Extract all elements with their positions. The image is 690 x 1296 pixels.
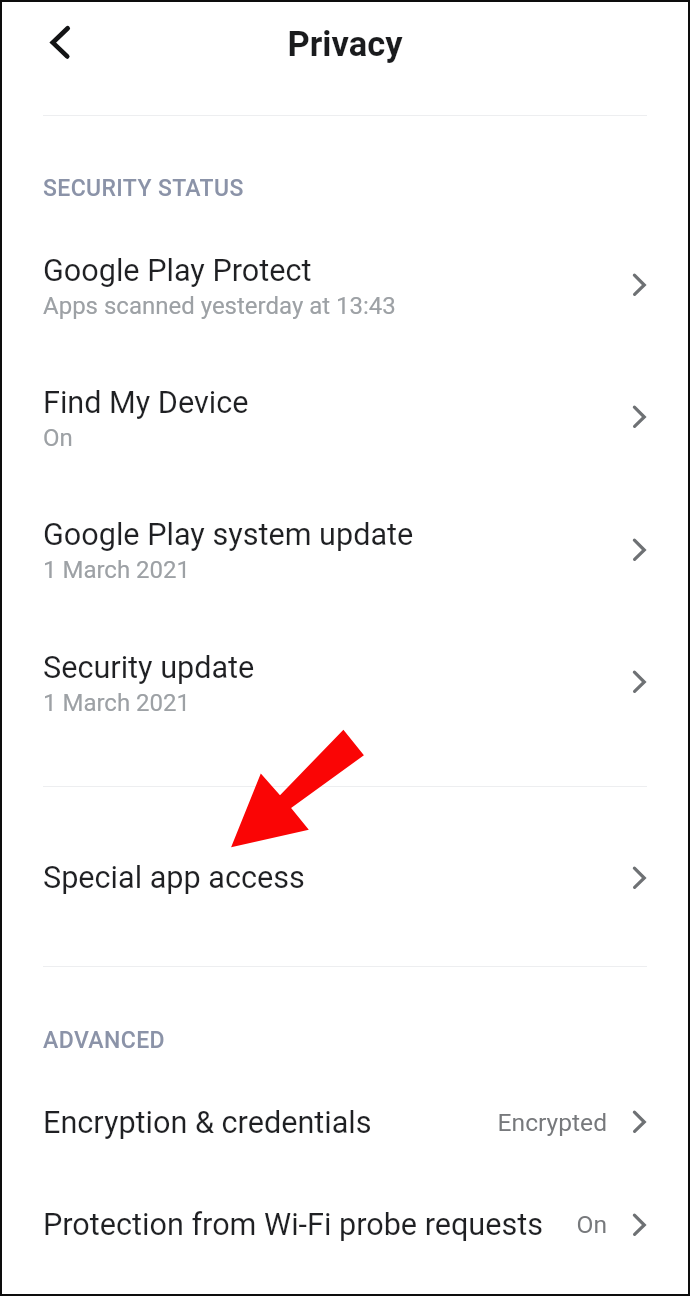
staticText: Encrypted <box>2 1108 607 1137</box>
staticText: Protection from Wi-Fi probe requests <box>43 1207 544 1243</box>
staticText: 1 March 2021 <box>43 689 191 717</box>
staticText: Security update <box>43 650 255 686</box>
button[interactable]: Find My Device <box>2 354 688 486</box>
staticText: Apps scanned yesterday at 13:43 <box>43 292 396 320</box>
staticText: Privacy <box>0 24 690 64</box>
staticText: On <box>2 1210 607 1239</box>
button[interactable]: Google Play system update <box>2 486 688 618</box>
staticText: ADVANCED <box>43 1027 166 1054</box>
staticText: On <box>43 424 73 452</box>
staticText: Special app access <box>43 860 305 896</box>
button[interactable]: Navigate up <box>31 14 87 70</box>
staticText: Google Play system update <box>43 517 414 553</box>
button[interactable]: Encryption & credentials <box>2 1072 688 1174</box>
staticText: 1 March 2021 <box>43 556 191 584</box>
staticText: Encryption & credentials <box>43 1105 372 1141</box>
button[interactable]: Special app access <box>2 788 688 966</box>
button[interactable]: Google Play Protect <box>2 222 688 354</box>
staticText: SECURITY STATUS <box>43 175 244 202</box>
staticText: Find My Device <box>43 385 249 421</box>
button[interactable]: Security update <box>2 618 688 750</box>
staticText: Google Play Protect <box>43 253 312 289</box>
button[interactable]: Protection from Wi-Fi probe requests <box>2 1174 688 1276</box>
